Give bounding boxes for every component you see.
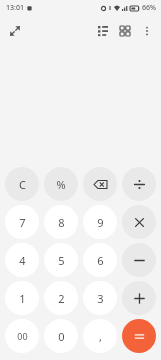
staticText: 00 [17,330,28,342]
button[interactable]: 8 [44,205,78,239]
staticText: C [19,177,26,192]
button[interactable]: 0 [44,319,78,353]
button[interactable]: Multiply [122,205,156,239]
staticText: 8 [58,215,65,230]
button[interactable]: More options [136,20,158,42]
button[interactable]: 7 [5,205,39,239]
staticText: % [56,177,66,192]
staticText: 7 [19,215,26,230]
button[interactable]: Unit converter [114,20,136,42]
button[interactable]: 5 [44,243,78,277]
staticText: 13:01 [6,3,24,13]
button[interactable]: Expand [4,20,26,42]
staticText: 4 [19,253,26,268]
button[interactable]: 00 [5,319,39,353]
button[interactable]: History [92,20,114,42]
button[interactable]: 9 [83,205,117,239]
button[interactable]: Divide [122,167,156,201]
staticText: 3 [97,291,104,306]
staticText: 0 [58,329,65,344]
button[interactable]: , [83,319,117,353]
staticText: , [99,329,102,344]
button[interactable]: Equals [122,319,156,353]
staticText: 9 [97,215,104,230]
button[interactable]: 2 [44,281,78,315]
button[interactable]: 3 [83,281,117,315]
button[interactable]: % [44,167,78,201]
staticText: 5 [58,253,65,268]
button[interactable]: 4 [5,243,39,277]
button[interactable]: Plus [122,281,156,315]
button[interactable]: Backspace [83,167,117,201]
button[interactable]: Minus [122,243,156,277]
staticText: 2 [58,291,65,306]
button[interactable]: 6 [83,243,117,277]
staticText: 6 [97,253,104,268]
staticText: 1 [19,291,26,306]
staticText: 66% [142,3,156,13]
button[interactable]: 1 [5,281,39,315]
button[interactable]: C [5,167,39,201]
